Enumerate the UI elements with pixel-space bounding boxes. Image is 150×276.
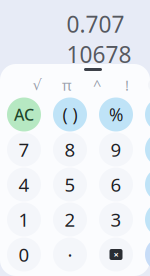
button[interactable]: 9	[99, 132, 133, 166]
button[interactable]: =	[145, 237, 150, 271]
staticText: !	[125, 75, 129, 95]
staticText: ^	[93, 75, 101, 95]
staticText: 2	[64, 207, 75, 232]
staticText: AC	[14, 104, 34, 125]
staticText: 9	[110, 137, 121, 162]
button[interactable]: 3	[99, 202, 133, 236]
staticText: %	[109, 103, 123, 126]
button[interactable]: Delete	[99, 237, 133, 271]
button[interactable]: %	[99, 97, 133, 131]
staticText: √	[32, 77, 41, 93]
button[interactable]: √	[28, 77, 46, 93]
button[interactable]: ×	[145, 132, 150, 166]
staticText: 3	[110, 207, 121, 232]
button[interactable]: ( )	[53, 97, 87, 131]
staticText: 1	[18, 207, 29, 232]
button[interactable]: !	[118, 77, 136, 93]
staticText: 4	[18, 172, 29, 197]
button[interactable]: More functions	[148, 78, 150, 92]
staticText: 0.707106781	[66, 9, 131, 99]
button[interactable]: −	[145, 167, 150, 201]
button[interactable]: π	[58, 77, 76, 93]
button[interactable]: 8	[53, 132, 87, 166]
button[interactable]: 4	[7, 167, 41, 201]
button[interactable]: +	[145, 202, 150, 236]
staticText: 7	[18, 137, 29, 162]
staticText: ( )	[62, 103, 77, 126]
staticText: ×	[113, 248, 118, 261]
button[interactable]: AC	[7, 97, 41, 131]
staticText: π	[62, 75, 72, 95]
staticText: 8	[64, 137, 75, 162]
button[interactable]: 1	[7, 202, 41, 236]
staticText: 6	[110, 172, 121, 197]
button[interactable]: ^	[88, 77, 106, 93]
button[interactable]: 7	[7, 132, 41, 166]
button[interactable]: 6	[99, 167, 133, 201]
button[interactable]: ·	[53, 237, 87, 271]
button[interactable]: 5	[53, 167, 87, 201]
staticText: 0	[18, 242, 29, 267]
button[interactable]: 0	[7, 237, 41, 271]
staticText: 5	[64, 172, 75, 197]
button[interactable]: 2	[53, 202, 87, 236]
staticText: ·	[67, 242, 72, 267]
button[interactable]: ÷	[145, 97, 150, 131]
